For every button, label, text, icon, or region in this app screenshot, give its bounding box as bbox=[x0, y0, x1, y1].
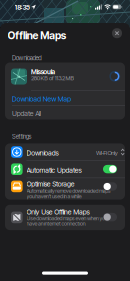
staticText: you haven't used in a while. bbox=[26, 193, 82, 199]
staticText: Settings bbox=[12, 133, 32, 140]
staticText: 18:35 bbox=[14, 3, 30, 11]
button[interactable]: Update All bbox=[5, 106, 125, 120]
staticText: Automatically remove downloaded maps bbox=[26, 188, 111, 194]
staticText: Downloaded bbox=[12, 54, 41, 62]
staticText: have an internet connection. bbox=[26, 220, 86, 227]
button[interactable]: Only Use Offline Maps bbox=[103, 213, 117, 221]
staticText: Optimise Storage bbox=[26, 180, 75, 188]
button[interactable]: Automatic Updates bbox=[103, 165, 117, 173]
staticText: Wi-Fi Only bbox=[96, 149, 118, 157]
button[interactable]: Download New Map bbox=[5, 90, 125, 105]
staticText: Use downloaded maps even when you bbox=[26, 215, 108, 222]
button[interactable]: Close bbox=[112, 28, 122, 38]
staticText: Update All bbox=[12, 109, 41, 118]
button[interactable]: Optimise Storage bbox=[103, 182, 117, 191]
staticText: Missoula bbox=[31, 68, 56, 76]
staticText: 280 KB of 113.2 MB bbox=[31, 75, 74, 82]
button[interactable]: Downloads bbox=[5, 143, 125, 161]
staticText: Only Use Offline Maps bbox=[26, 208, 89, 216]
staticText: Download New Map bbox=[12, 95, 71, 103]
staticText: Downloads bbox=[26, 149, 58, 157]
staticText: Offline Maps bbox=[7, 29, 66, 42]
staticText: Automatic Updates bbox=[26, 166, 81, 174]
button[interactable]: Missoula bbox=[5, 62, 125, 90]
